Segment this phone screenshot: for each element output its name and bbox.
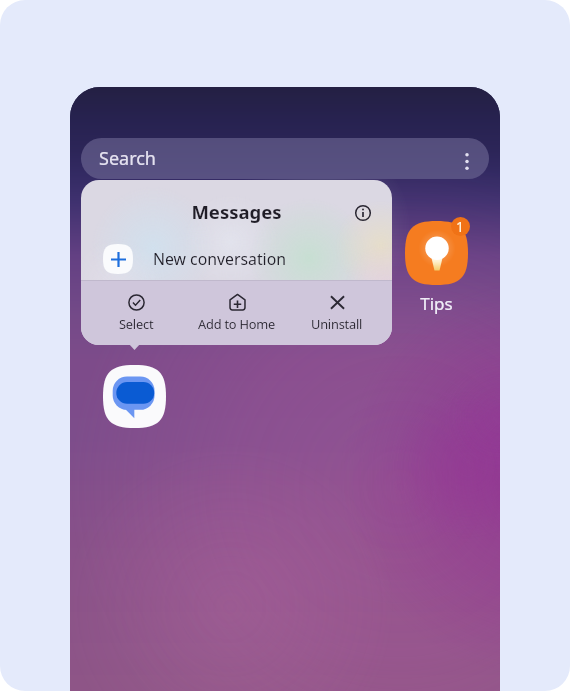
button[interactable]: Search — [81, 138, 489, 179]
staticText: Select — [119, 315, 154, 332]
button[interactable]: App info — [352, 202, 374, 224]
staticText: 1 — [456, 217, 465, 236]
staticText: Messages — [81, 199, 392, 224]
staticText: Tips — [396, 292, 477, 315]
button[interactable]: Add to Home — [187, 280, 287, 345]
button[interactable]: Select — [86, 280, 187, 345]
button[interactable]: 1 — [396, 211, 477, 311]
staticText: Uninstall — [311, 315, 363, 332]
button[interactable]: New conversation — [81, 242, 392, 276]
staticText: New conversation — [153, 248, 287, 270]
button[interactable]: More options — [456, 150, 478, 172]
staticText: Add to Home — [198, 315, 276, 332]
button[interactable]: Uninstall — [287, 280, 387, 345]
button[interactable] — [94, 365, 174, 428]
staticText: Search — [99, 146, 156, 171]
